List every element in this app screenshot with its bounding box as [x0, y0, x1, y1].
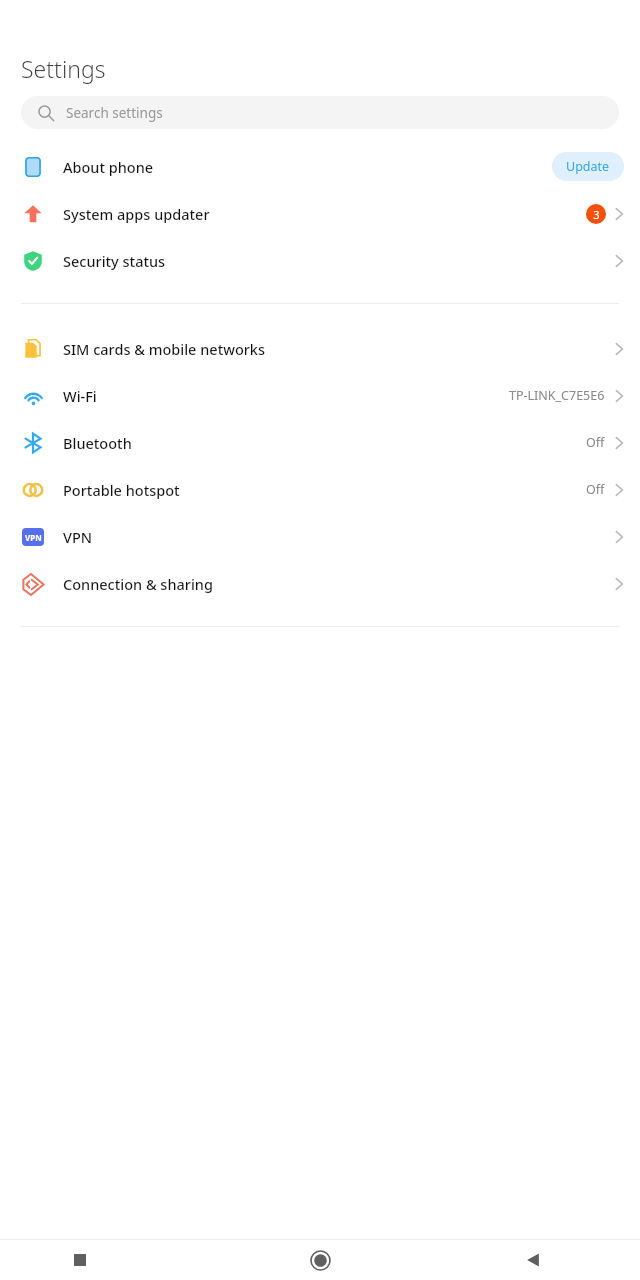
staticText: About phone	[63, 157, 154, 177]
staticText: Bluetooth	[63, 433, 132, 453]
staticText: SIM cards & mobile networks	[63, 339, 266, 359]
staticText: Connection & sharing	[63, 574, 213, 594]
staticText: Wi-Fi	[63, 386, 97, 406]
button[interactable]: SIM cards & mobile networks	[0, 325, 640, 372]
staticText: Update	[566, 158, 610, 175]
staticText: TP-LINK_C7E5E6	[509, 387, 605, 404]
staticText: Off	[586, 434, 605, 451]
button[interactable]: Portable hotspot	[0, 466, 640, 513]
staticText: Portable hotspot	[63, 480, 180, 500]
button[interactable]: Connection & sharing	[0, 560, 640, 607]
button[interactable]: Back	[427, 1240, 640, 1280]
button[interactable]: Recent apps	[0, 1240, 214, 1280]
button[interactable]: About phone	[0, 143, 640, 190]
button[interactable]: Security status	[0, 237, 640, 284]
staticText: VPN	[25, 532, 42, 543]
button[interactable]: Home	[214, 1240, 427, 1280]
button[interactable]: System apps updater	[0, 190, 640, 237]
staticText: Off	[586, 481, 605, 498]
button[interactable]: VPN	[0, 513, 640, 560]
staticText: System apps updater	[63, 204, 210, 224]
button[interactable]: Wi-Fi	[0, 372, 640, 419]
staticText: Security status	[63, 251, 166, 271]
staticText: Settings	[21, 53, 106, 84]
staticText: Search settings	[66, 104, 163, 122]
staticText: VPN	[63, 527, 93, 547]
button[interactable]: Search settings	[21, 96, 619, 129]
button[interactable]: Bluetooth	[0, 419, 640, 466]
staticText: 3	[593, 207, 600, 222]
button[interactable]: Update	[552, 152, 624, 181]
